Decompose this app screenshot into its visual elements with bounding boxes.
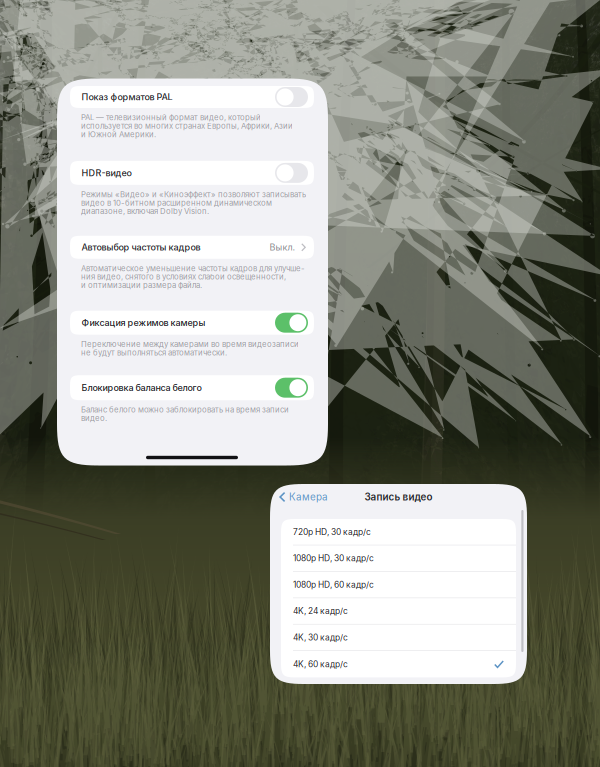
staticText: 4K, 60 кадр/с — [293, 659, 348, 669]
staticText: 1080p HD, 30 кадр/с — [293, 553, 374, 563]
staticText: 4K, 24 кадр/с — [293, 606, 348, 616]
button[interactable]: Показ форматов PAL — [70, 86, 314, 108]
staticText: 4K, 30 кадр/с — [293, 632, 348, 643]
staticText: Блокировка баланса белого — [81, 382, 201, 393]
staticText: Фиксация режимов камеры — [81, 317, 205, 328]
button[interactable]: Автовыбор частоты кадров — [70, 236, 314, 259]
staticText: не будут выполняться автоматически. — [81, 348, 227, 357]
staticText: PAL — телевизионный формат видео, которы… — [81, 113, 261, 122]
staticText: видео. — [81, 413, 107, 423]
staticText: Режимы «Видео» и «Киноэффект» позволяют … — [81, 190, 306, 199]
staticText: Переключение между камерами во время вид… — [81, 340, 299, 349]
button[interactable]: HDR-видео — [70, 161, 314, 185]
staticText: 1080p HD, 60 кадр/с — [293, 580, 374, 590]
staticText: диапазоне, включая Dolby Vision. — [81, 207, 209, 216]
staticText: HDR-видео — [81, 167, 131, 178]
button[interactable]: Выключено — [275, 163, 308, 183]
button[interactable]: Включено — [275, 313, 308, 333]
button[interactable]: Камера — [270, 484, 334, 509]
button[interactable]: 1080p HD, 30 кадр/с — [281, 545, 516, 572]
staticText: и оптимизации размера файла. — [81, 280, 202, 290]
staticText: Баланс белого можно заблокировать на вре… — [81, 405, 289, 414]
staticText: 720p HD, 30 кадр/с — [293, 527, 371, 537]
button[interactable]: 4K, 60 кадр/с — [281, 651, 516, 677]
staticText: и Южной Америки. — [81, 130, 156, 139]
button[interactable]: Выключено — [275, 87, 308, 107]
button[interactable]: Фиксация режимов камеры — [70, 311, 314, 335]
button[interactable]: 720p HD, 30 кадр/с — [281, 519, 516, 545]
button[interactable]: Включено — [275, 378, 308, 398]
staticText: Автовыбор частоты кадров — [81, 242, 200, 253]
staticText: Камера — [289, 491, 328, 503]
staticText: Автоматическое уменьшение частоты кадров… — [81, 264, 305, 273]
staticText: ния видео, снятого в условиях слабой осв… — [81, 272, 286, 281]
staticText: видео в 10-битном расширенном динамическ… — [81, 198, 272, 208]
button[interactable]: 4K, 30 кадр/с — [281, 625, 516, 651]
button[interactable]: Блокировка баланса белого — [70, 375, 314, 400]
button[interactable]: 4K, 24 кадр/с — [281, 598, 516, 625]
staticText: Выкл. — [269, 242, 295, 253]
staticText: Запись видео — [364, 491, 432, 503]
staticText: Показ форматов PAL — [81, 91, 172, 102]
button[interactable]: 1080p HD, 60 кадр/с — [281, 572, 516, 598]
staticText: используется во многих странах Европы, А… — [81, 121, 293, 131]
